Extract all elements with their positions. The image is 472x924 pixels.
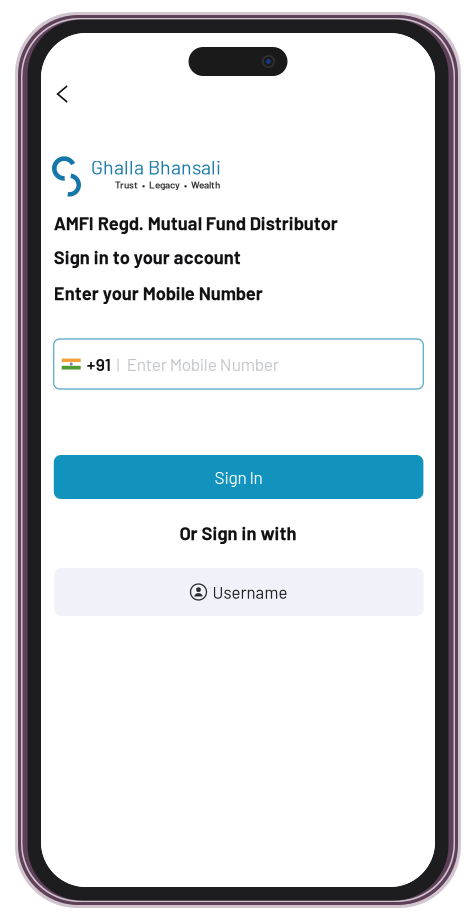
staticText: AMFI Regd. Mutual Fund Distributor	[54, 212, 338, 234]
staticText: Username	[212, 582, 287, 602]
staticText: +91	[87, 354, 111, 374]
staticText: Sign in to your account	[54, 246, 241, 268]
staticText: Or Sign in with	[179, 522, 296, 544]
staticText: |	[117, 354, 120, 374]
staticText: Enter Mobile Number	[127, 354, 279, 374]
staticText: Enter your Mobile Number	[54, 282, 263, 304]
staticText: Sign In	[215, 467, 263, 487]
button[interactable]: Username	[54, 568, 424, 616]
staticText: Ghalla Bhansali	[91, 155, 221, 178]
staticText: Trust • Legacy • Wealth	[115, 178, 220, 190]
button[interactable]: Sign In	[54, 455, 423, 499]
button[interactable]: Back	[49, 77, 83, 111]
